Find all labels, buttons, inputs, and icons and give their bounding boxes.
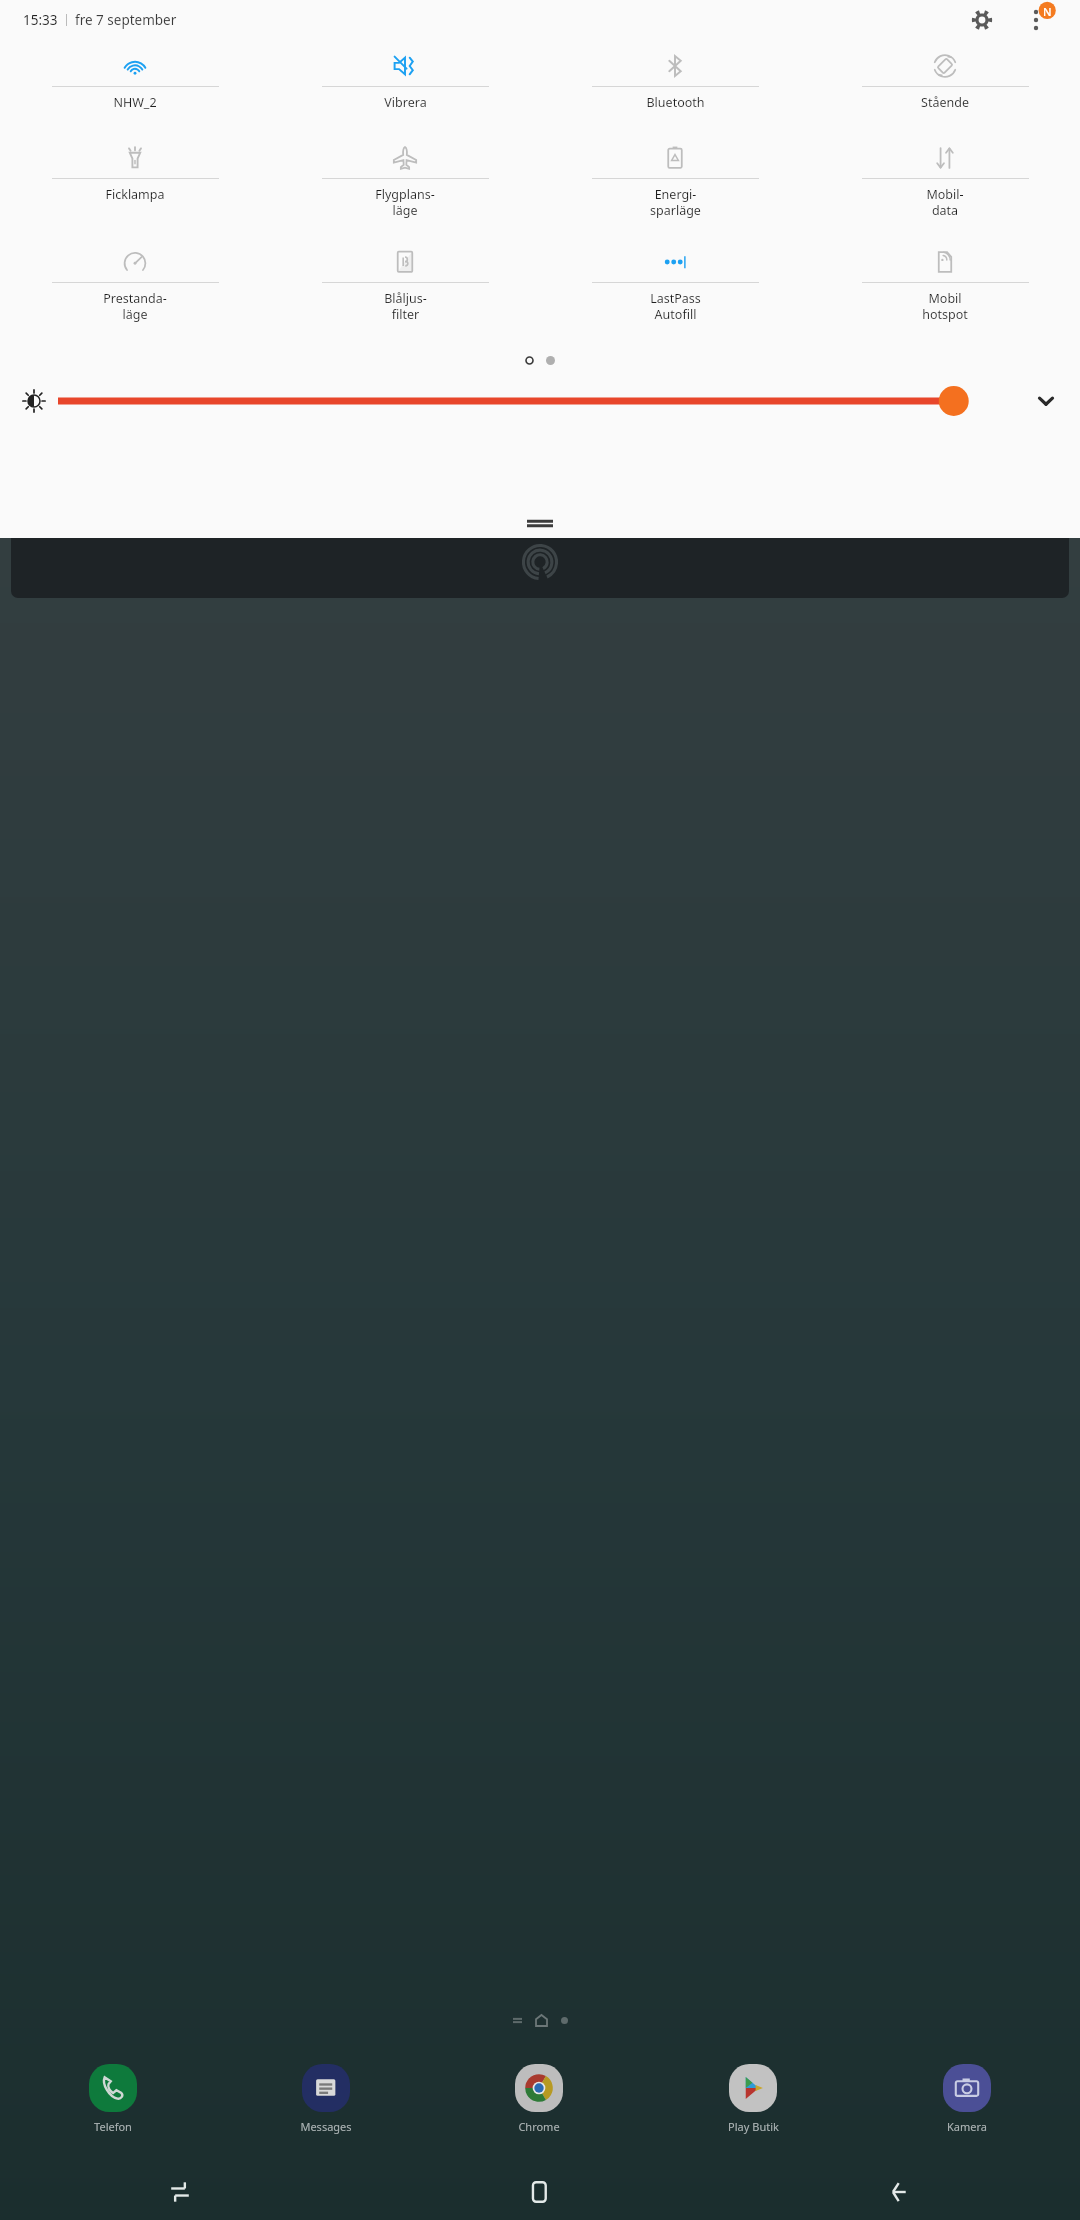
button[interactable]: Kamera (860, 2064, 1074, 2134)
staticText: Chrome (518, 2119, 560, 2134)
button[interactable]: Recents (0, 2164, 360, 2220)
button[interactable]: Chrome (432, 2064, 646, 2134)
button[interactable]: Back (720, 2164, 1080, 2220)
staticText: Mobil hotspot (922, 290, 968, 322)
button[interactable]: Messages (219, 2064, 432, 2134)
button[interactable]: Settings (962, 0, 1002, 40)
staticText: fre 7 september (75, 11, 177, 29)
staticText: Mobil- data (926, 186, 964, 218)
staticText: Blåljus- filter (384, 290, 427, 322)
button[interactable]: LastPass Autofill (540, 242, 810, 346)
button[interactable]: NHW_2 (0, 46, 270, 138)
button[interactable]: Vibrera (270, 46, 540, 138)
button[interactable] (58, 381, 1016, 421)
button[interactable]: Facebook (219, 404, 432, 474)
staticText: Kamera (947, 2119, 987, 2134)
staticText: Vibrera (384, 94, 427, 111)
button[interactable]: Connect (646, 404, 860, 474)
button[interactable]: More options (1018, 0, 1062, 40)
button[interactable]: Ficklampa (0, 138, 270, 242)
staticText: Energi- sparläge (650, 186, 701, 218)
staticText: Play Butik (728, 2119, 779, 2134)
button[interactable]: Brightness (14, 381, 54, 421)
button[interactable]: Blåljus- filter (270, 242, 540, 346)
button[interactable]: Energi- sparläge (540, 138, 810, 242)
staticText: Ficklampa (105, 186, 165, 203)
button[interactable]: Messenger (860, 404, 1074, 474)
staticText: NHW_2 (113, 94, 157, 111)
button[interactable]: Mobil hotspot (810, 242, 1080, 346)
staticText: Stående (921, 94, 969, 111)
button[interactable]: Mobil- data (810, 138, 1080, 242)
button[interactable]: Pocket Casts widget (11, 526, 1069, 598)
button[interactable]: Play Butik (646, 2064, 860, 2134)
staticText: N (1043, 4, 1052, 19)
button[interactable]: Gmail (6, 404, 219, 474)
button[interactable]: Home (360, 2164, 720, 2220)
staticText: LastPass Autofill (650, 290, 701, 322)
button[interactable]: Stående (810, 46, 1080, 138)
button[interactable]: Expand brightness settings (1026, 381, 1066, 421)
button[interactable]: Prestanda- läge (0, 242, 270, 346)
staticText: Prestanda- läge (103, 290, 167, 322)
button[interactable]: Spotify (432, 404, 646, 474)
button[interactable]: Telefon (6, 2064, 219, 2134)
button[interactable]: Bluetooth (540, 46, 810, 138)
button[interactable]: Collapse panel (0, 516, 1080, 530)
staticText: Messages (300, 2119, 352, 2134)
staticText: Flygplans- läge (375, 186, 435, 218)
staticText: Bluetooth (646, 94, 705, 111)
staticText: Telefon (94, 2119, 132, 2134)
staticText: 15:33 (23, 11, 58, 29)
button[interactable]: Flygplans- läge (270, 138, 540, 242)
